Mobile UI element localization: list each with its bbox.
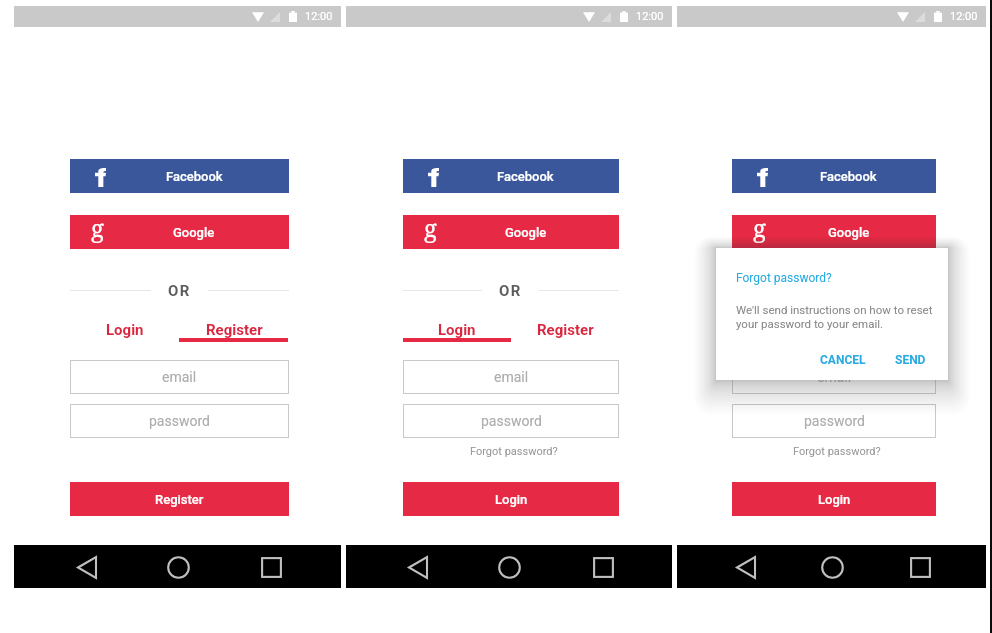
button[interactable]: Register: [834, 321, 936, 343]
staticText: g: [91, 211, 104, 244]
staticText: Login: [495, 492, 528, 507]
staticText: Google: [173, 225, 215, 240]
staticText: email: [817, 369, 852, 385]
button[interactable]: SEND: [895, 353, 926, 367]
button[interactable]: Register: [511, 321, 619, 343]
staticText: We'll send instructions on how to reset …: [736, 303, 940, 331]
staticText: OR: [499, 282, 522, 300]
button[interactable]: Login: [70, 321, 179, 343]
staticText: Login: [764, 321, 802, 339]
staticText: password: [804, 413, 865, 429]
button[interactable]: Recent apps: [255, 554, 281, 580]
button[interactable]: Back: [405, 554, 431, 580]
staticText: password: [481, 413, 542, 429]
button[interactable]: email: [70, 360, 289, 394]
staticText: 12:00: [950, 10, 978, 23]
button[interactable]: Facebook: [403, 159, 619, 193]
staticText: Register: [857, 321, 914, 339]
button[interactable]: Login: [732, 482, 936, 516]
staticText: Facebook: [166, 169, 223, 184]
staticText: Login: [106, 321, 144, 339]
button[interactable]: Back: [733, 554, 759, 580]
button[interactable]: Back: [74, 554, 100, 580]
button[interactable]: password: [732, 404, 936, 438]
staticText: 12:00: [305, 10, 333, 23]
button[interactable]: g: [70, 215, 289, 249]
button[interactable]: g: [403, 215, 619, 249]
button[interactable]: Home: [165, 554, 191, 580]
button[interactable]: Recent apps: [587, 554, 613, 580]
button[interactable]: password: [403, 404, 619, 438]
staticText: Login: [438, 321, 476, 339]
button[interactable]: Forgot password?: [793, 445, 881, 458]
staticText: email: [494, 369, 529, 385]
staticText: Facebook: [497, 169, 554, 184]
staticText: 12:00: [636, 10, 664, 23]
button[interactable]: Facebook: [732, 159, 936, 193]
staticText: Register: [155, 492, 204, 507]
button[interactable]: Register: [179, 321, 289, 343]
staticText: OR: [168, 282, 191, 300]
staticText: g: [424, 211, 437, 244]
staticText: Google: [505, 225, 547, 240]
button[interactable]: Forgot password?: [470, 445, 558, 458]
button[interactable]: Facebook: [70, 159, 289, 193]
staticText: password: [149, 413, 210, 429]
button[interactable]: Login: [403, 482, 619, 516]
button[interactable]: Home: [496, 554, 522, 580]
staticText: Facebook: [820, 169, 877, 184]
staticText: Google: [828, 225, 870, 240]
button[interactable]: password: [70, 404, 289, 438]
staticText: g: [753, 211, 766, 244]
staticText: email: [162, 369, 197, 385]
button[interactable]: CANCEL: [820, 353, 866, 367]
staticText: Forgot password?: [736, 271, 832, 285]
button[interactable]: email: [732, 360, 936, 394]
staticText: Register: [206, 321, 263, 339]
button[interactable]: Login: [732, 321, 834, 343]
button[interactable]: email: [403, 360, 619, 394]
button[interactable]: g: [732, 215, 936, 249]
staticText: Login: [818, 492, 851, 507]
button[interactable]: Login: [403, 321, 511, 343]
staticText: Register: [537, 321, 594, 339]
button[interactable]: Recent apps: [904, 554, 930, 580]
button[interactable]: Home: [819, 554, 845, 580]
button[interactable]: Register: [70, 482, 289, 516]
